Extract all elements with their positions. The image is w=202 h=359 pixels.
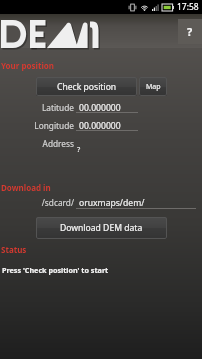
staticText: /sdcard/: [20, 197, 74, 208]
staticText: Your position: [1, 60, 54, 71]
staticText: Check position: [57, 81, 117, 93]
staticText: ?: [77, 144, 81, 154]
staticText: Map: [146, 82, 161, 92]
staticText: 00.000000: [79, 120, 121, 132]
staticText: Download DEM data: [60, 222, 143, 234]
staticText: Press 'Check position' to start: [2, 265, 109, 275]
staticText: oruxmaps/dem/: [79, 197, 145, 209]
staticText: Address: [20, 138, 74, 149]
staticText: 17:58: [177, 1, 199, 13]
button[interactable]: Check position: [36, 77, 137, 96]
button[interactable]: Help: [178, 19, 202, 44]
staticText: Download in: [1, 182, 51, 193]
staticText: 00.000000: [79, 102, 121, 114]
staticText: Longitude: [20, 120, 74, 131]
button[interactable]: Download DEM data: [36, 217, 167, 239]
button[interactable]: Map: [139, 77, 167, 96]
staticText: Latitude: [20, 102, 74, 113]
staticText: Status: [1, 244, 27, 255]
staticText: ?: [187, 24, 193, 39]
